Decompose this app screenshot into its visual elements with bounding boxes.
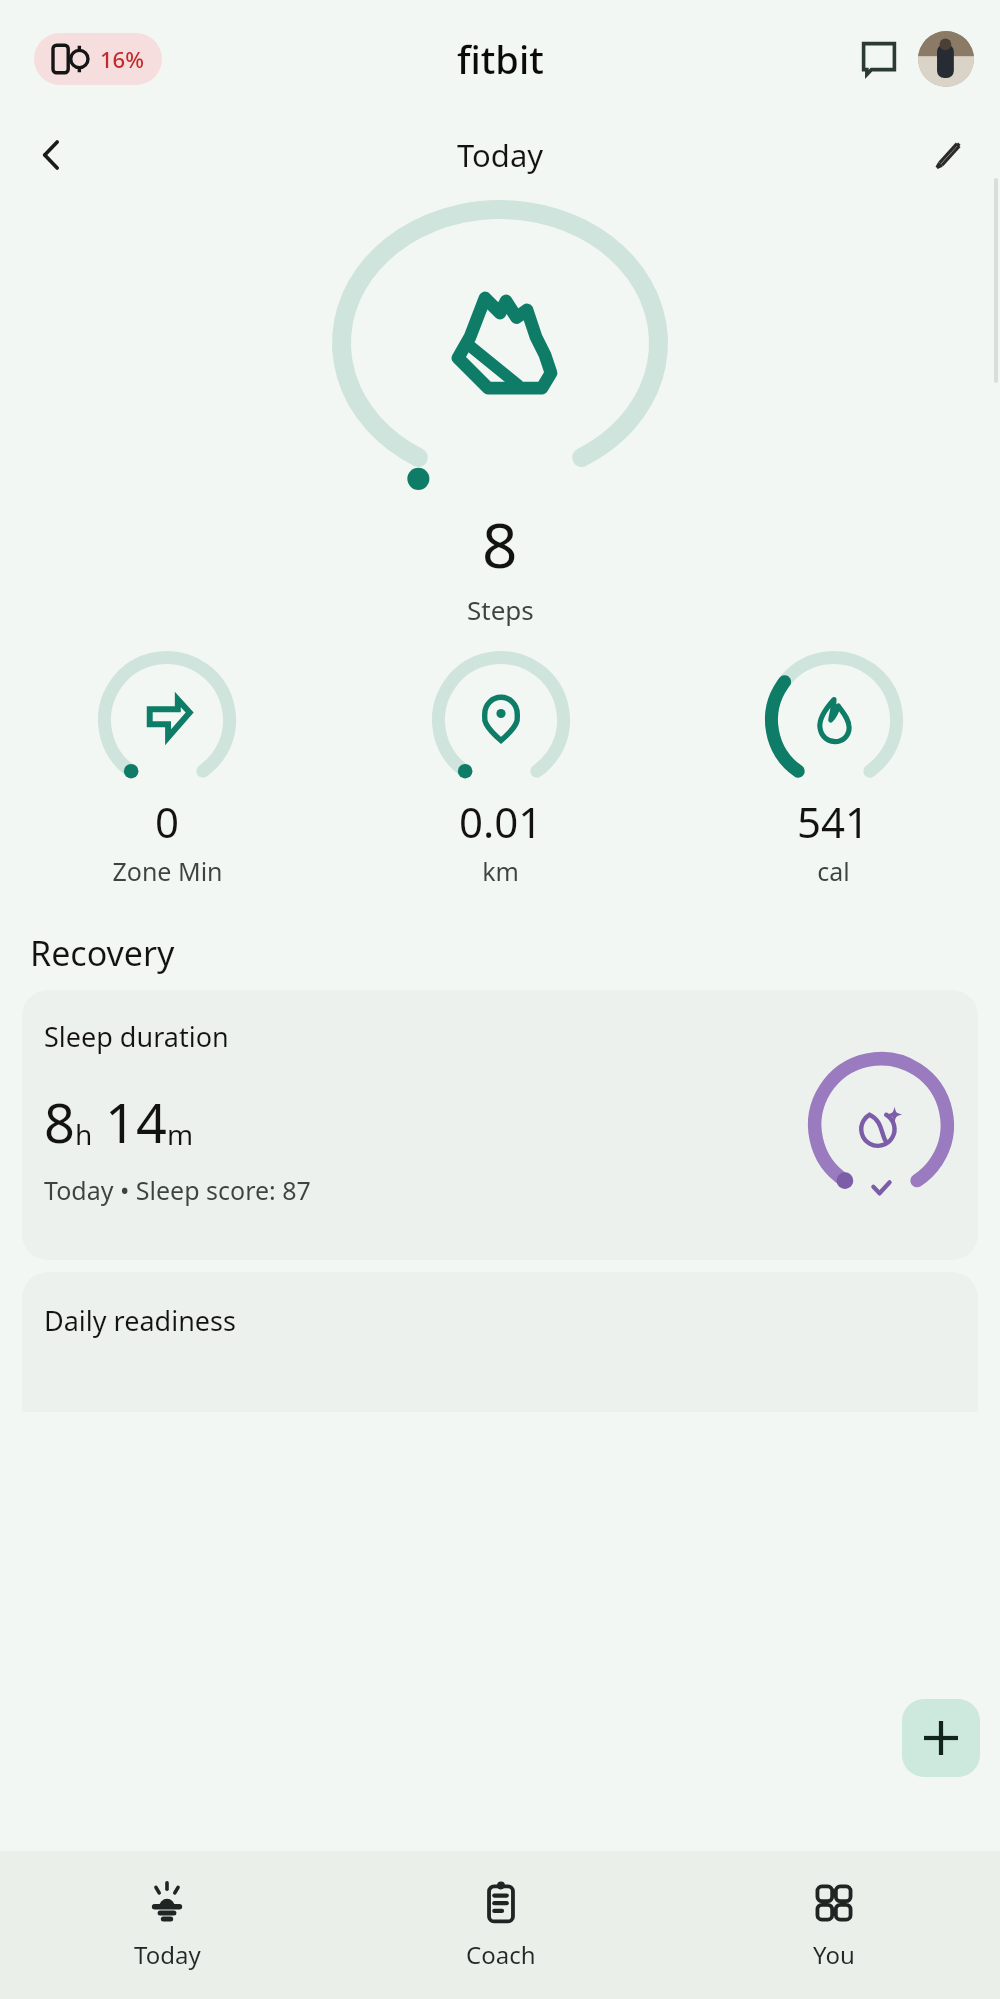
staticText: Steps [467,592,534,627]
button[interactable]: Today [0,1851,334,1999]
staticText: 0.01 [459,793,543,850]
button[interactable]: 16% [34,33,162,85]
staticText: h [75,1115,93,1153]
staticText: Today [134,1938,201,1971]
staticText: You [813,1938,855,1971]
staticText: Today • Sleep score: 87 [44,1173,311,1207]
button[interactable]: Previous day [24,127,80,183]
staticText: km [482,854,519,888]
staticText: 8 [482,502,518,586]
staticText: 541 [797,793,870,850]
staticText: Today [457,134,544,176]
button[interactable]: Daily readiness [22,1272,978,1412]
button[interactable]: Coach [334,1851,667,1999]
button[interactable]: Messages [852,32,906,86]
button[interactable]: Profile [918,31,974,87]
staticText: 16% [100,44,144,74]
staticText: Recovery [30,930,175,976]
button[interactable]: Sleep duration [22,990,978,1260]
staticText: Sleep duration [44,1018,229,1055]
staticText: 8 [44,1085,75,1159]
staticText: fitbit [457,33,544,85]
button[interactable]: 0 [0,649,334,888]
button[interactable]: 0.01 [334,649,667,888]
staticText: Daily readiness [44,1302,236,1339]
button[interactable]: Add [902,1699,980,1777]
staticText: cal [817,854,850,888]
staticText: 14 [105,1085,167,1159]
staticText: 0 [155,793,180,850]
button[interactable]: 541 [667,649,1000,888]
staticText: Zone Min [112,854,223,888]
staticText: m [167,1115,194,1153]
staticText: Coach [466,1938,536,1971]
button[interactable]: Edit [920,127,976,183]
button[interactable]: You [667,1851,1000,1999]
